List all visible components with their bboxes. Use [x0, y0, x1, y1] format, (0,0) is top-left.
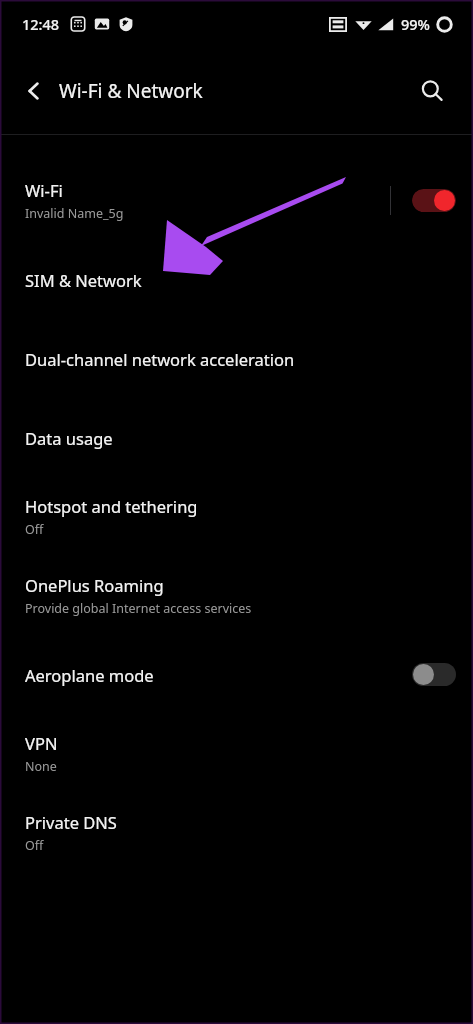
staticText: Aeroplane mode: [25, 664, 154, 686]
staticText: OnePlus Roaming: [25, 574, 164, 596]
staticText: Hotspot and tethering: [25, 495, 198, 517]
button[interactable]: Dual-channel network acceleration: [0, 319, 473, 398]
button[interactable]: SIM & Network: [0, 240, 473, 319]
button[interactable]: Data usage: [0, 398, 473, 477]
button[interactable]: VPN: [0, 714, 473, 793]
staticText: Off: [25, 521, 44, 538]
button[interactable]: Back: [12, 69, 56, 113]
button[interactable]: Toggle off: [412, 663, 456, 686]
staticText: Private DNS: [25, 811, 117, 833]
staticText: 12:48: [22, 14, 60, 34]
button[interactable]: Wi-Fi on: [412, 189, 456, 212]
staticText: Wi-Fi: [25, 179, 63, 201]
button[interactable]: OnePlus Roaming: [0, 556, 473, 635]
staticText: Provide global Internet access services: [25, 600, 252, 617]
staticText: SIM & Network: [25, 269, 142, 291]
staticText: 99%: [401, 14, 430, 34]
button[interactable]: Toggle on: [412, 189, 456, 212]
button[interactable]: Search: [411, 70, 453, 112]
button[interactable]: Aeroplane mode: [0, 635, 473, 714]
staticText: None: [25, 758, 57, 775]
staticText: Data usage: [25, 427, 113, 449]
button[interactable]: Private DNS: [0, 793, 473, 872]
button[interactable]: Hotspot and tethering: [0, 477, 473, 556]
staticText: Off: [25, 837, 44, 854]
staticText: VPN: [25, 732, 58, 754]
staticText: Dual-channel network acceleration: [25, 348, 295, 370]
staticText: Wi-Fi & Network: [59, 78, 203, 104]
button[interactable]: Wi-Fi: [0, 161, 473, 240]
staticText: Invalid Name_5g: [25, 205, 124, 222]
